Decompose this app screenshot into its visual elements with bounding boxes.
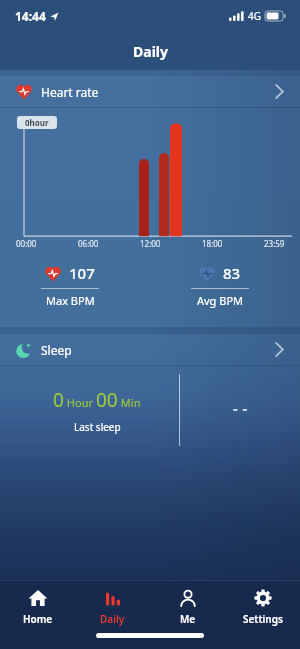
staticText: Home	[23, 612, 53, 626]
button[interactable]: Daily	[75, 581, 150, 633]
button[interactable]: Me	[150, 581, 225, 633]
button[interactable]: Home	[0, 581, 75, 633]
staticText: 00:00	[16, 238, 37, 249]
staticText: 00	[96, 387, 118, 413]
staticText: 0	[53, 387, 64, 413]
staticText: Last sleep	[74, 420, 121, 434]
staticText: Me	[180, 612, 196, 626]
staticText: Daily	[100, 612, 125, 626]
staticText: Daily	[133, 42, 168, 61]
staticText: 06:00	[78, 238, 99, 249]
staticText: Hour	[64, 395, 96, 410]
staticText: 23:59	[264, 238, 285, 249]
staticText: 4G	[248, 9, 261, 23]
staticText: Settings	[243, 612, 283, 626]
button[interactable]: Sleep	[0, 334, 300, 365]
staticText: Avg BPM	[197, 293, 244, 308]
staticText: 107	[69, 263, 95, 283]
staticText: 12:00	[140, 238, 161, 249]
staticText: 83	[223, 263, 241, 283]
staticText: 0hour	[25, 117, 49, 128]
staticText: Min	[118, 395, 141, 410]
button[interactable]: Settings	[225, 581, 300, 633]
staticText: 14:44	[15, 8, 46, 24]
staticText: Max BPM	[46, 293, 95, 308]
staticText: Sleep	[41, 342, 72, 358]
staticText: 18:00	[202, 238, 223, 249]
button[interactable]: Heart rate	[0, 76, 300, 107]
staticText: Heart rate	[41, 84, 99, 100]
